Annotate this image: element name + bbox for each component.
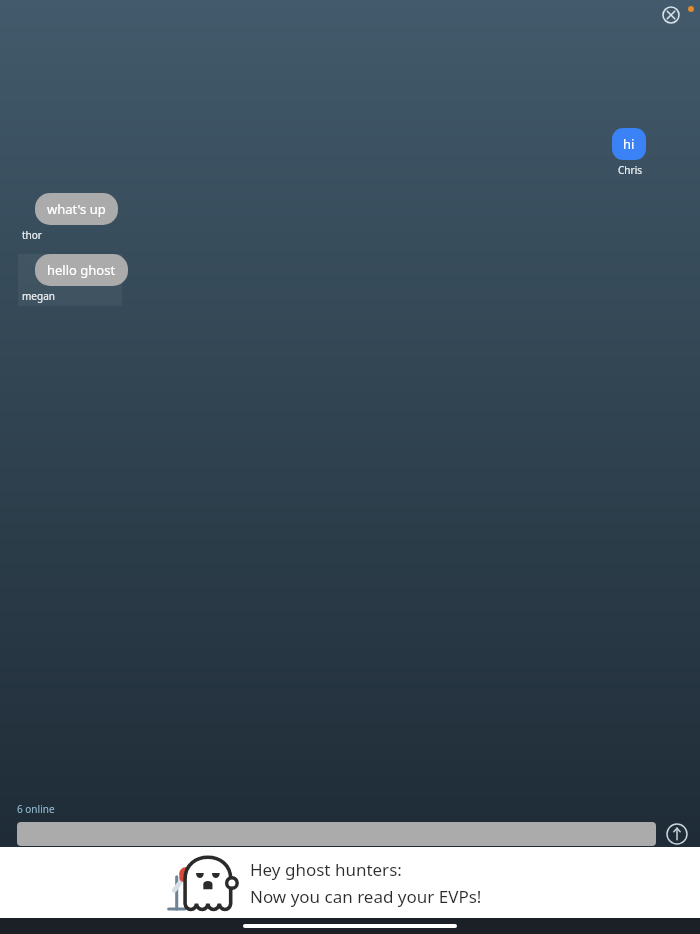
button[interactable] <box>17 822 656 846</box>
button[interactable]: Hey ghost hunters: <box>0 847 700 918</box>
staticText: what's up <box>47 200 106 218</box>
staticText: hello ghost <box>47 261 116 279</box>
staticText: 6 online <box>17 802 55 816</box>
staticText: Hey ghost hunters: <box>250 858 402 881</box>
staticText: thor <box>22 228 42 242</box>
staticText: hi <box>623 135 635 153</box>
button[interactable]: hello ghost <box>35 254 128 286</box>
staticText: Chris <box>618 163 642 177</box>
button[interactable]: Close <box>658 2 684 28</box>
staticText: Now you can read your EVPs! <box>250 885 482 908</box>
staticText: megan <box>22 289 55 303</box>
button[interactable]: Send <box>664 821 690 847</box>
button[interactable]: hi <box>612 128 646 160</box>
button[interactable]: what's up <box>35 193 118 225</box>
